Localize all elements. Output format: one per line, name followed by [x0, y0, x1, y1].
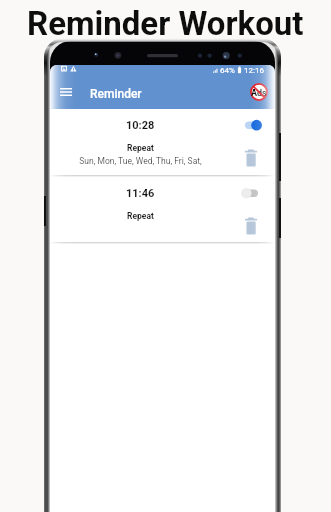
button[interactable]: Remove ads	[250, 83, 268, 101]
button[interactable]: Open navigation menu	[53, 79, 78, 104]
button[interactable]: Enable reminder	[239, 182, 263, 204]
staticText: 11:46	[126, 187, 155, 200]
staticText: 12:16	[244, 66, 264, 75]
staticText: Repeat	[127, 143, 154, 153]
button[interactable]: 11:46	[50, 177, 275, 242]
staticText: Sun, Mon, Tue, Wed, Thu, Fri, Sat,	[79, 156, 202, 166]
button[interactable]: Delete reminder	[245, 217, 258, 235]
staticText: Reminder Workout	[27, 4, 304, 43]
button[interactable]: Disable reminder	[239, 114, 263, 136]
staticText: Reminder	[90, 87, 142, 101]
button[interactable]: Delete reminder	[245, 149, 258, 167]
staticText: Ads	[251, 88, 267, 99]
staticText: 64%	[220, 66, 235, 75]
staticText: Repeat	[127, 211, 154, 221]
button[interactable]: 10:28	[50, 109, 275, 175]
staticText: 10:28	[126, 119, 155, 132]
